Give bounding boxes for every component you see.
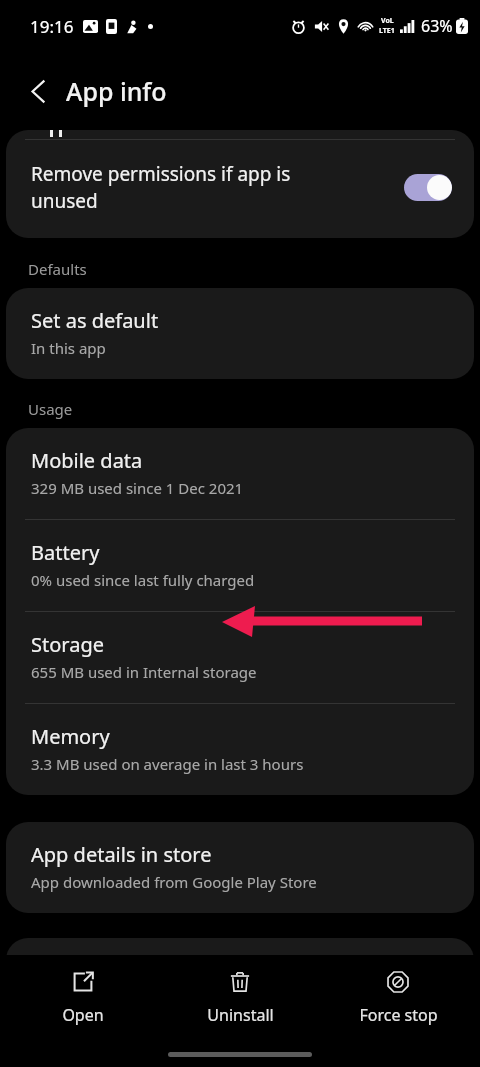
staticText: Remove permissions if app is unused <box>31 161 394 214</box>
button[interactable]: Set as default <box>6 288 474 379</box>
button[interactable]: Uninstall <box>165 964 315 1032</box>
button[interactable]: Remove permissions if app is unused <box>6 140 474 238</box>
staticText: Open <box>62 1004 104 1026</box>
staticText: App downloaded from Google Play Store <box>31 872 317 892</box>
staticText: Storage <box>31 631 104 658</box>
staticText: 63% <box>421 15 453 37</box>
button[interactable]: Open <box>8 964 158 1032</box>
staticText: Force stop <box>359 1004 438 1026</box>
button[interactable]: Storage <box>6 612 474 703</box>
staticText: App details in store <box>31 841 212 868</box>
staticText: VoL <box>381 16 394 26</box>
button[interactable]: Mobile data <box>6 428 474 519</box>
staticText: App info <box>66 74 167 108</box>
staticText: 3.3 MB used on average in last 3 hours <box>31 754 304 774</box>
button[interactable]: Battery <box>6 520 474 611</box>
staticText: 329 MB used since 1 Dec 2021 <box>31 478 244 498</box>
staticText: LTE1 <box>379 26 395 36</box>
button[interactable]: Memory <box>6 704 474 795</box>
staticText: In this app <box>31 338 106 358</box>
staticText: Usage <box>28 399 73 419</box>
staticText: Uninstall <box>207 1004 274 1026</box>
staticText: 655 MB used in Internal storage <box>31 662 257 682</box>
button[interactable]: App details in store <box>6 822 474 913</box>
staticText: 19:16 <box>30 15 74 38</box>
button[interactable]: Back <box>14 67 62 115</box>
staticText: Battery <box>31 539 100 566</box>
staticText: 0% used since last fully charged <box>31 570 255 590</box>
staticText: Defaults <box>28 259 87 279</box>
staticText: Version 11.70.0.36 <box>31 960 169 982</box>
staticText: Mobile data <box>31 447 143 474</box>
button[interactable]: Remove permissions if app is unused togg… <box>404 174 452 201</box>
button[interactable]: Force stop <box>323 964 473 1032</box>
staticText: Set as default <box>31 307 159 334</box>
staticText: Memory <box>31 723 110 750</box>
